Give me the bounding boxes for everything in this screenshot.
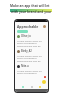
- button[interactable]: Birdy_42: [17, 49, 46, 63]
- staticText: Nite.u: [21, 64, 29, 68]
- button[interactable]: Nite.u: [17, 64, 46, 75]
- staticText: Lorem ipsum dolor sit amet consectetur a…: [17, 54, 46, 63]
- staticText: with your brand and your community today: [11, 10, 52, 14]
- staticText: Lorem ipsum dolor sit amet consectetur a…: [17, 69, 46, 75]
- button[interactable]: Olive_io: [17, 34, 46, 48]
- button[interactable]: Create post: [42, 80, 46, 84]
- staticText: Olive_io: [21, 34, 31, 38]
- staticText: Lorem ipsum dolor sit amet consectetur a…: [17, 39, 46, 48]
- staticText: Make an app that will let your audience …: [10, 4, 52, 8]
- button[interactable]: Filter: [17, 30, 28, 33]
- staticText: Birdy_42: [21, 49, 32, 53]
- staticText: Approchable: [17, 24, 39, 29]
